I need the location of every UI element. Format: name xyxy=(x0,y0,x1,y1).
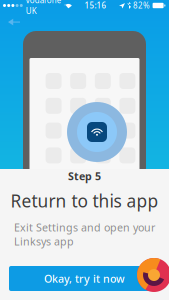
staticText: Okay, try it now xyxy=(44,271,125,286)
staticText: vodafone UK xyxy=(26,0,62,16)
staticText: 15:16 xyxy=(84,0,106,11)
button[interactable]: Back xyxy=(0,12,28,31)
staticText: Step 5 xyxy=(68,169,101,183)
staticText: Exit Settings and open your Linksys app xyxy=(14,220,155,248)
staticText: 82% xyxy=(133,0,150,11)
staticText: Return to this app xyxy=(10,189,158,212)
button[interactable]: Okay, try it now xyxy=(9,266,160,291)
